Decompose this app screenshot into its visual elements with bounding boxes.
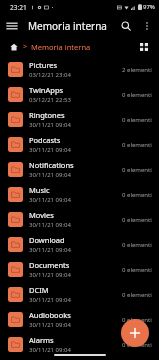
- button[interactable]: Cambia vista a griglia: [135, 38, 153, 56]
- button[interactable]: Apri menu di navigazione: [0, 14, 23, 37]
- staticText: 0 elementi: [122, 316, 152, 324]
- button[interactable]: Documents: [0, 257, 159, 282]
- button[interactable]: Home: [6, 39, 22, 55]
- staticText: 0 elementi: [122, 266, 152, 274]
- button[interactable]: TwinApps: [0, 82, 159, 107]
- staticText: Movies: [29, 210, 54, 220]
- staticText: 0 elementi: [122, 116, 152, 124]
- staticText: 30/11/21 09:04: [29, 321, 71, 329]
- staticText: Ringtones: [29, 110, 65, 120]
- staticText: Alarms: [29, 335, 54, 345]
- staticText: 30/11/21 09:04: [29, 196, 71, 204]
- button[interactable]: Download: [0, 232, 159, 257]
- button[interactable]: Movies: [0, 207, 159, 232]
- staticText: 0 elementi: [122, 291, 152, 299]
- staticText: 0 elementi: [122, 91, 152, 99]
- button[interactable]: Notifications: [0, 157, 159, 182]
- staticText: 0 elementi: [122, 191, 152, 199]
- staticText: 30/11/21 09:04: [29, 246, 71, 254]
- staticText: Memoria interna: [28, 19, 115, 33]
- staticText: 2 elementi: [122, 66, 152, 74]
- staticText: 30/11/21 09:04: [29, 221, 71, 229]
- staticText: Memoria interna: [31, 42, 91, 52]
- button[interactable]: DCIM: [0, 282, 159, 307]
- button[interactable]: Cerca: [115, 15, 137, 37]
- staticText: DCIM: [29, 285, 49, 295]
- button[interactable]: Podcasts: [0, 132, 159, 157]
- button[interactable]: Altre opzioni: [137, 16, 157, 36]
- staticText: 30/11/21 09:04: [29, 346, 71, 354]
- staticText: Notifications: [29, 160, 74, 170]
- staticText: 30/11/21 09:04: [29, 171, 71, 179]
- staticText: Podcasts: [29, 135, 61, 145]
- staticText: 30/11/21 09:04: [29, 146, 71, 154]
- staticText: >: [23, 42, 28, 52]
- staticText: Pictures: [29, 60, 58, 70]
- staticText: 97%: [143, 3, 155, 11]
- staticText: 0 elementi: [122, 216, 152, 224]
- staticText: TwinApps: [29, 85, 64, 95]
- button[interactable]: Crea nuovo: [121, 319, 149, 347]
- button[interactable]: Memoria interna: [31, 42, 91, 52]
- staticText: 0 elementi: [122, 166, 152, 174]
- staticText: 30/11/21 09:04: [29, 271, 71, 279]
- staticText: Download: [29, 235, 65, 245]
- staticText: 0 elementi: [122, 141, 152, 149]
- staticText: 0 elementi: [122, 341, 152, 349]
- button[interactable]: Pictures: [0, 57, 159, 82]
- staticText: 30/11/21 09:04: [29, 121, 71, 129]
- button[interactable]: Ringtones: [0, 107, 159, 132]
- button[interactable]: Audiobooks: [0, 307, 159, 332]
- staticText: Documents: [29, 260, 70, 270]
- staticText: 03/12/21 22:53: [29, 96, 71, 104]
- staticText: Audiobooks: [29, 310, 71, 320]
- staticText: 30/11/21 09:04: [29, 296, 71, 304]
- button[interactable]: Music: [0, 182, 159, 207]
- staticText: 0 elementi: [122, 241, 152, 249]
- staticText: Music: [29, 185, 50, 195]
- button[interactable]: Alarms: [0, 332, 159, 357]
- staticText: 03/12/21 23:04: [29, 71, 71, 79]
- staticText: 23:21: [10, 3, 27, 12]
